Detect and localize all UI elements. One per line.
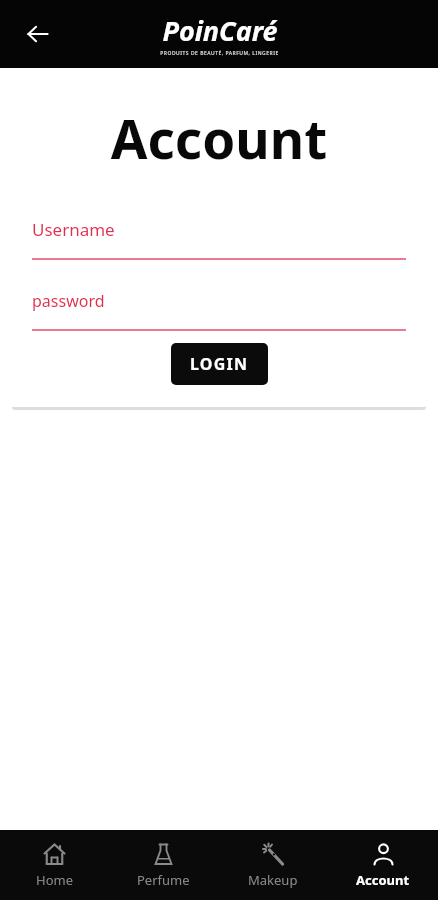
button[interactable]: Back [14, 10, 62, 58]
staticText: Username [32, 218, 115, 241]
staticText: Account [11, 102, 427, 174]
button[interactable]: password [32, 290, 406, 331]
staticText: Home [36, 871, 73, 889]
button[interactable]: Makeup [218, 830, 328, 900]
button[interactable]: Perfume [109, 830, 218, 900]
staticText: Perfume [137, 871, 190, 889]
button[interactable]: Home [0, 830, 109, 900]
button[interactable]: Account [328, 830, 438, 900]
staticText: Account [356, 871, 410, 889]
button[interactable]: LOGIN [171, 343, 268, 385]
button[interactable]: Username [32, 218, 406, 260]
staticText: PoinCaré [162, 12, 278, 49]
staticText: PRODUITS DE BEAUTÉ, PARFUM, LINGERIE [160, 50, 279, 57]
staticText: Makeup [248, 871, 298, 889]
staticText: LOGIN [190, 353, 249, 375]
staticText: password [32, 290, 105, 312]
